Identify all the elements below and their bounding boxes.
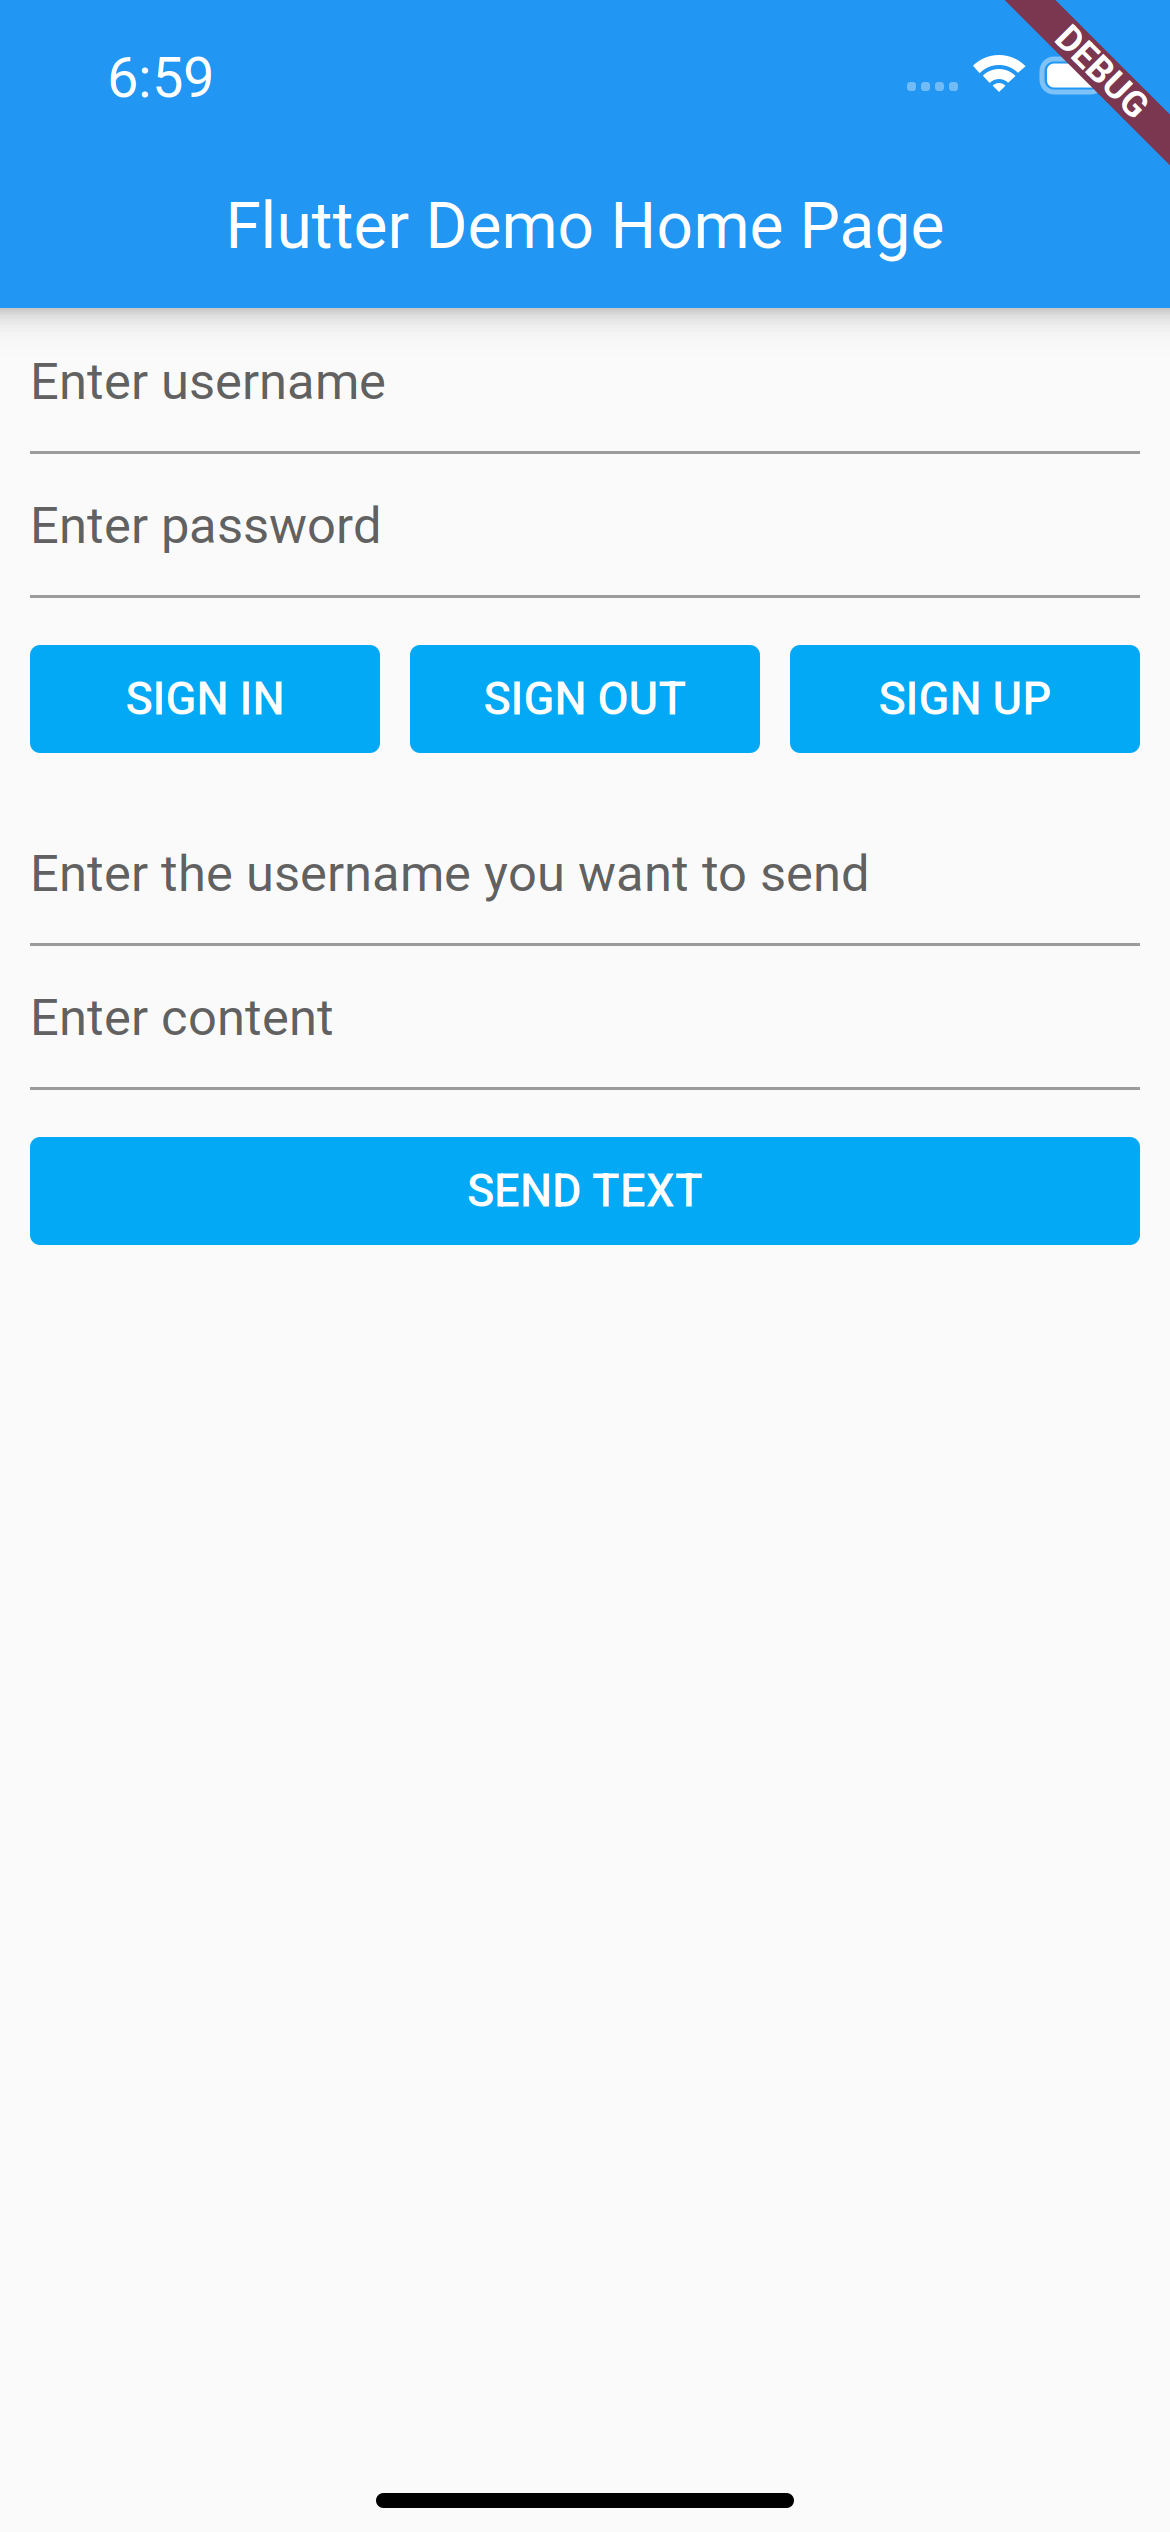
staticText: SIGN IN [125,672,284,725]
staticText: SIGN UP [878,672,1051,725]
staticText: Flutter Demo Home Page [225,188,944,263]
staticText: Enter username [30,352,386,411]
staticText: SEND TEXT [467,1164,703,1217]
staticText: Enter content [30,988,334,1047]
button[interactable]: SEND TEXT [30,1137,1140,1245]
staticText: Enter password [30,496,382,555]
button[interactable]: SIGN UP [790,645,1140,753]
button[interactable]: Enter username [30,308,1140,454]
button[interactable]: SIGN OUT [410,645,760,753]
button[interactable]: SIGN IN [30,645,380,753]
staticText: 6:59 [107,45,214,111]
staticText: DEBUG [1045,49,1160,91]
staticText: Enter the username you want to send [30,844,870,903]
button[interactable]: Enter password [30,454,1140,598]
staticText: SIGN OUT [483,672,686,725]
button[interactable]: Enter content [30,946,1140,1090]
button[interactable]: Enter the username you want to send [30,753,1140,946]
